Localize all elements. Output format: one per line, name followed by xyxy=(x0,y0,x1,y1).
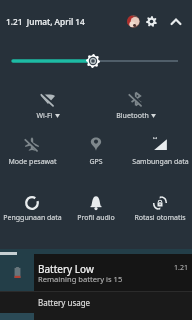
staticText: Mode pesawat xyxy=(8,157,57,167)
button[interactable]: Bluetooth xyxy=(104,88,168,127)
button[interactable]: GPS xyxy=(64,133,128,173)
staticText: Remaining battery is 15 xyxy=(38,274,123,284)
button[interactable]: Profil audio xyxy=(64,192,128,229)
staticText: 1.21 xyxy=(174,263,188,273)
staticText: Battery usage xyxy=(38,297,91,308)
staticText: Profil audio xyxy=(77,213,115,223)
staticText: Bluetooth xyxy=(116,111,149,121)
staticText: GPS xyxy=(89,157,103,167)
button[interactable]: Brightness xyxy=(0,50,192,72)
button[interactable]: Wi-Fi xyxy=(16,88,80,127)
button[interactable]: Rotasi otomatis xyxy=(128,192,192,229)
button[interactable]: Mode pesawat xyxy=(0,133,64,173)
staticText: Rotasi otomatis xyxy=(134,213,186,223)
staticText: 1.21 Jumat, April 14 xyxy=(6,16,85,27)
button[interactable]: User profile xyxy=(127,15,140,28)
staticText: Penggunaan data xyxy=(3,213,62,223)
button[interactable]: Settings xyxy=(144,14,158,28)
button[interactable]: Sambungan data xyxy=(128,133,192,173)
staticText: Wi-Fi xyxy=(36,111,53,121)
staticText: Sambungan data xyxy=(132,157,189,167)
button[interactable]: Collapse xyxy=(169,14,183,28)
button[interactable]: Battery Low xyxy=(34,254,192,291)
staticText: Battery Low xyxy=(38,262,94,276)
button[interactable]: Penggunaan data xyxy=(0,192,64,229)
button[interactable]: Battery usage xyxy=(0,291,192,320)
